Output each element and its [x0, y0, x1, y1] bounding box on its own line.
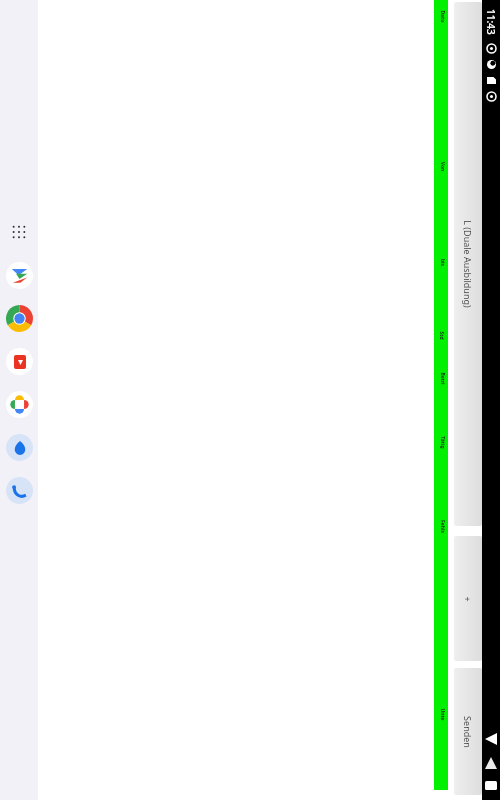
staticText: Von von	[438, 159, 445, 173]
staticText: Fehlstunden / Art	[438, 519, 445, 533]
button[interactable]: +	[454, 536, 482, 661]
staticText: L (Duale Ausbildung)	[462, 220, 474, 308]
button[interactable]: YouTube	[6, 348, 33, 375]
staticText: +	[462, 596, 474, 602]
staticText: Std	[438, 331, 445, 340]
button[interactable]: All apps	[6, 219, 32, 245]
staticText: 11:43	[484, 9, 498, 35]
staticText: Tätigkeit	[438, 435, 445, 449]
staticText: bis bis	[438, 255, 445, 269]
button[interactable]: Phone	[6, 477, 33, 504]
staticText: Senden	[462, 716, 474, 748]
button[interactable]: Google Photos	[6, 391, 33, 418]
staticText: Datum	[438, 9, 445, 23]
staticText: Unterschrift / Vollmacht	[438, 707, 445, 721]
button[interactable]: Google Classroom	[6, 262, 33, 289]
button[interactable]: Senden	[454, 668, 482, 795]
button[interactable]: L (Duale Ausbildung)	[454, 2, 482, 526]
staticText: Betriebsstätte	[438, 371, 445, 385]
button[interactable]: Chrome	[6, 305, 33, 332]
button[interactable]: Messages	[6, 434, 33, 461]
